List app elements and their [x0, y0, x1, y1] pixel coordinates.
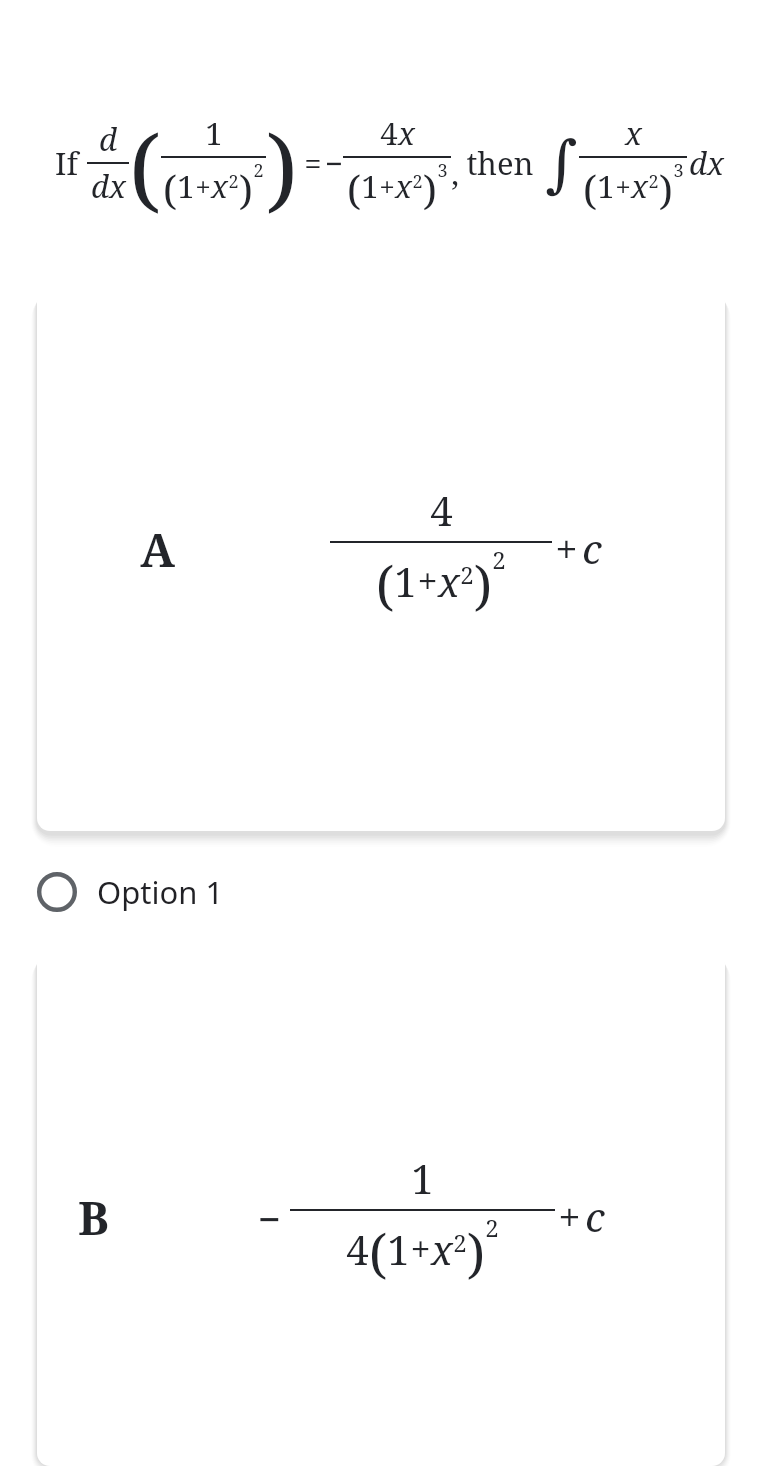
staticText: x	[398, 112, 415, 154]
staticText: +	[615, 167, 631, 205]
staticText: (	[163, 162, 177, 216]
staticText: )	[659, 162, 673, 216]
staticText: +	[417, 556, 438, 605]
staticText: 1	[394, 554, 417, 608]
staticText: 4	[380, 112, 398, 154]
staticText: (	[583, 162, 597, 216]
staticText: 1	[387, 1222, 410, 1276]
staticText: 2	[453, 1226, 467, 1259]
staticText: −	[257, 1191, 281, 1245]
staticText: =	[304, 142, 322, 184]
staticText: c	[582, 521, 602, 575]
staticText: 4	[430, 483, 453, 537]
staticText: (	[129, 104, 161, 229]
button[interactable]: Select Option 1	[0, 861, 761, 923]
staticText: 1	[597, 165, 615, 207]
staticText: dx	[689, 142, 724, 184]
staticText: 3	[437, 158, 448, 183]
staticText: )	[474, 549, 492, 620]
staticText: 2	[460, 558, 474, 591]
staticText: 1	[361, 165, 379, 207]
staticText: 2	[492, 543, 506, 576]
staticText: ,	[451, 152, 459, 194]
staticText: B	[78, 1186, 109, 1249]
staticText: (	[369, 1217, 387, 1288]
staticText: c	[585, 1189, 605, 1243]
staticText: )	[266, 104, 298, 229]
staticText: (	[347, 162, 361, 216]
staticText: +	[410, 1224, 431, 1273]
staticText: x	[625, 112, 642, 154]
staticText: x	[431, 1222, 453, 1276]
staticText: −	[325, 142, 343, 184]
staticText: x	[438, 554, 460, 608]
staticText: x	[211, 165, 228, 207]
staticText: 3	[673, 158, 684, 183]
staticText: 2	[228, 169, 239, 194]
staticText: 1	[177, 165, 195, 207]
button[interactable]: A	[37, 289, 725, 831]
staticText: x	[631, 165, 648, 207]
staticText: d	[99, 118, 117, 160]
staticText: )	[239, 162, 253, 216]
staticText: Option 1	[97, 871, 224, 913]
staticText: 2	[253, 158, 264, 183]
staticText: 1	[411, 1151, 434, 1205]
staticText: +	[555, 521, 578, 575]
staticText: +	[379, 167, 395, 205]
staticText: If	[55, 142, 78, 184]
staticText: )	[423, 162, 437, 216]
staticText: 4	[346, 1222, 369, 1276]
other: Select Option 1	[37, 872, 77, 912]
staticText: 2	[648, 169, 659, 194]
staticText: x	[395, 165, 412, 207]
staticText: dx	[91, 165, 126, 207]
staticText: 1	[205, 112, 223, 154]
staticText: ∫	[545, 127, 578, 199]
button[interactable]: B	[37, 951, 725, 1466]
staticText: +	[558, 1189, 581, 1243]
staticText: )	[467, 1217, 485, 1288]
staticText: 2	[485, 1211, 499, 1244]
staticText: +	[195, 167, 211, 205]
staticText: (	[376, 549, 394, 620]
staticText: 2	[412, 169, 423, 194]
staticText: then	[466, 142, 534, 184]
staticText: A	[140, 518, 175, 581]
